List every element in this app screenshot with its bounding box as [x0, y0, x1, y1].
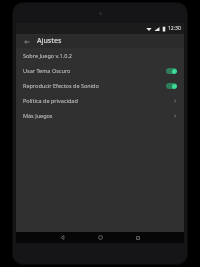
button[interactable]: Reproducir Efectos de Sonido: [16, 78, 184, 93]
button[interactable]: Política de privacidad: [16, 93, 184, 108]
button[interactable]: Más Juegos: [16, 108, 184, 123]
button[interactable]: Home: [89, 232, 111, 243]
staticText: Más Juegos: [23, 112, 173, 119]
staticText: Reproducir Efectos de Sonido: [23, 82, 166, 89]
staticText: Ajustes: [37, 36, 62, 46]
staticText: 12:30: [168, 25, 181, 32]
button[interactable]: Recent apps: [127, 232, 149, 243]
button[interactable]: Back: [21, 36, 32, 47]
staticText: Política de privacidad: [23, 97, 173, 104]
staticText: Sobre Juego v.1.0.2: [23, 52, 73, 59]
button[interactable]: Sobre Juego v.1.0.2: [16, 48, 184, 63]
staticText: Usar Tema Oscuro: [23, 67, 166, 74]
button[interactable]: Usar Tema Oscuro: [16, 63, 184, 78]
button[interactable]: Back: [51, 232, 73, 243]
